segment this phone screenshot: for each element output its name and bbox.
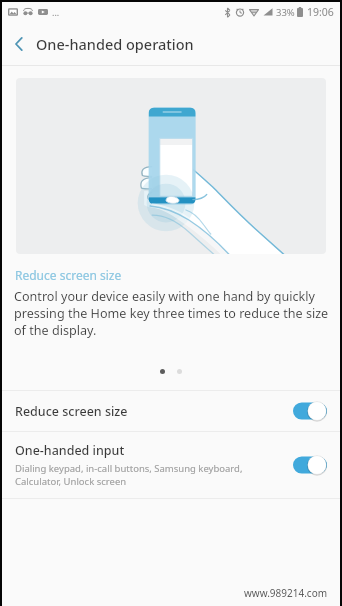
staticText: 33% (276, 6, 295, 19)
staticText: Reduce screen size (15, 267, 122, 283)
button[interactable]: Reduce screen size (2, 391, 340, 431)
staticText: One-handed operation (36, 34, 194, 54)
staticText: Control your device easily with one hand… (14, 288, 329, 339)
button[interactable]: Toggle (293, 401, 327, 421)
staticText: Dialing keypad, in-call buttons, Samsung… (15, 462, 243, 488)
staticText: www.989214.com (244, 586, 328, 600)
staticText: One-handed input (15, 442, 125, 459)
staticText: ... (52, 6, 60, 18)
staticText: Reduce screen size (15, 403, 128, 420)
button[interactable]: Back (2, 22, 36, 65)
button[interactable]: One-handed input (2, 432, 340, 498)
staticText: 19:06 (307, 5, 334, 19)
button[interactable]: Toggle (293, 455, 327, 475)
